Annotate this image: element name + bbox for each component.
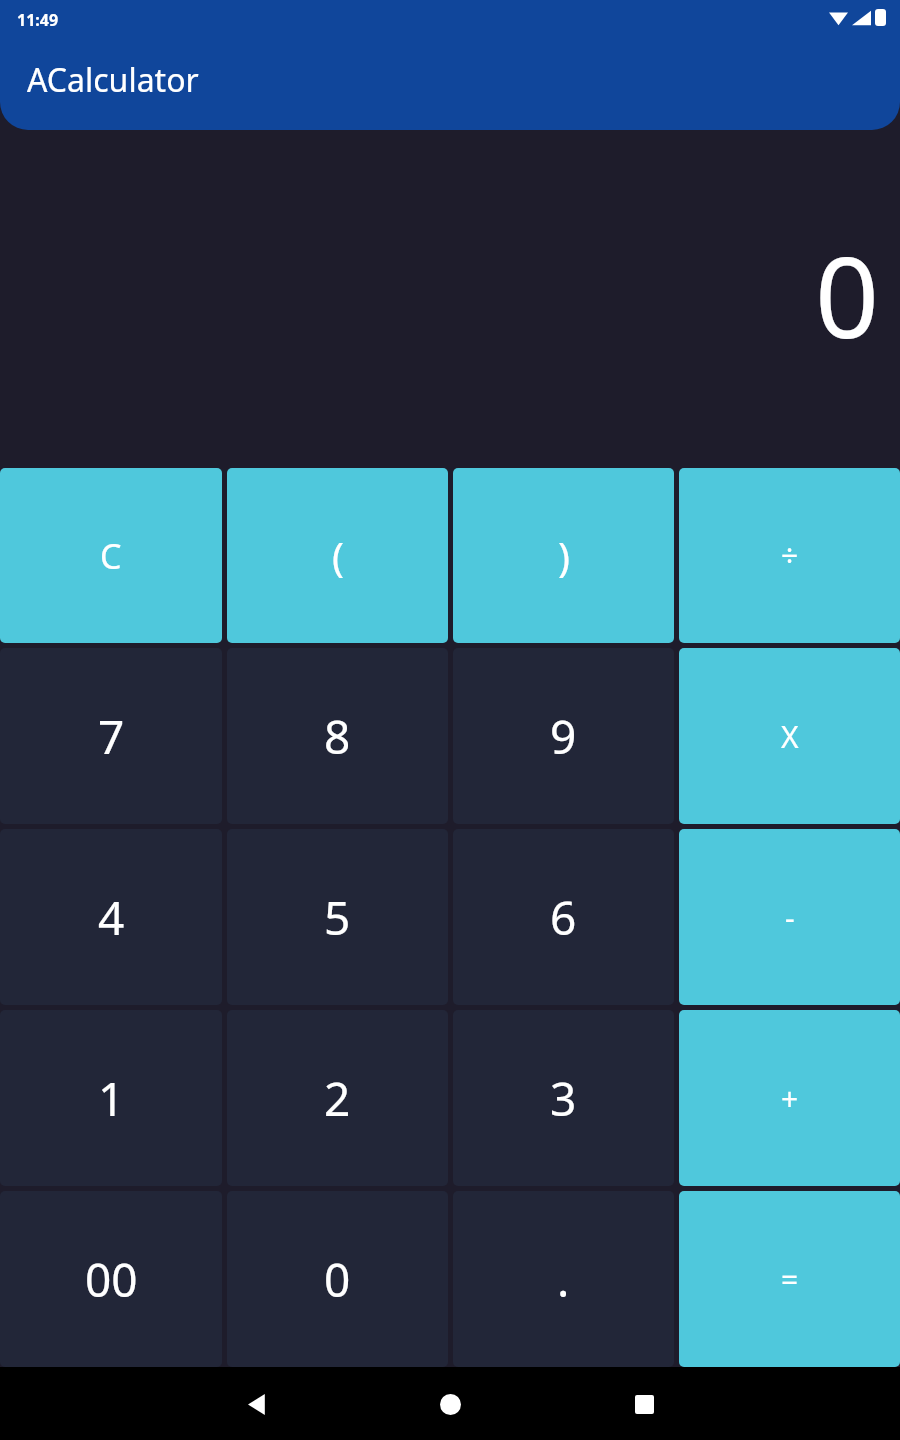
button[interactable]: . xyxy=(453,1191,674,1367)
button[interactable]: + xyxy=(679,1010,900,1186)
button[interactable]: 8 xyxy=(227,648,448,824)
button[interactable]: 9 xyxy=(453,648,674,824)
staticText: 9 xyxy=(550,705,577,768)
staticText: 5 xyxy=(324,886,351,949)
button[interactable]: Recent apps xyxy=(618,1378,670,1430)
staticText: 0 xyxy=(815,218,880,371)
staticText: 2 xyxy=(324,1067,351,1130)
button[interactable]: 1 xyxy=(0,1010,222,1186)
button[interactable]: 2 xyxy=(227,1010,448,1186)
button[interactable]: 5 xyxy=(227,829,448,1005)
button[interactable]: ( xyxy=(227,468,448,643)
staticText: 11:49 xyxy=(17,9,59,31)
staticText: . xyxy=(557,1248,570,1311)
button[interactable]: 4 xyxy=(0,829,222,1005)
staticText: 4 xyxy=(98,886,125,949)
button[interactable]: C xyxy=(0,468,222,643)
staticText: 3 xyxy=(550,1067,577,1130)
staticText: 8 xyxy=(324,705,351,768)
button[interactable]: = xyxy=(679,1191,900,1367)
button[interactable]: 7 xyxy=(0,648,222,824)
button[interactable]: X xyxy=(679,648,900,824)
staticText: 0 xyxy=(324,1248,351,1311)
staticText: ) xyxy=(558,529,570,583)
staticText: 00 xyxy=(85,1248,138,1311)
button[interactable]: ) xyxy=(453,468,674,643)
button[interactable]: Back xyxy=(232,1378,284,1430)
button[interactable]: - xyxy=(679,829,900,1005)
staticText: C xyxy=(100,533,122,579)
staticText: = xyxy=(781,1259,799,1300)
staticText: X xyxy=(781,716,799,757)
staticText: ÷ xyxy=(781,535,799,576)
staticText: ( xyxy=(332,529,344,583)
button[interactable]: 3 xyxy=(453,1010,674,1186)
staticText: + xyxy=(781,1078,799,1119)
staticText: - xyxy=(785,897,795,938)
button[interactable]: 6 xyxy=(453,829,674,1005)
button[interactable]: 00 xyxy=(0,1191,222,1367)
button[interactable]: 0 xyxy=(227,1191,448,1367)
button[interactable]: Home xyxy=(424,1378,476,1430)
staticText: 7 xyxy=(98,705,125,768)
staticText: 1 xyxy=(98,1067,125,1130)
button[interactable]: ÷ xyxy=(679,468,900,643)
staticText: ACalculator xyxy=(27,58,199,102)
staticText: 6 xyxy=(550,886,577,949)
